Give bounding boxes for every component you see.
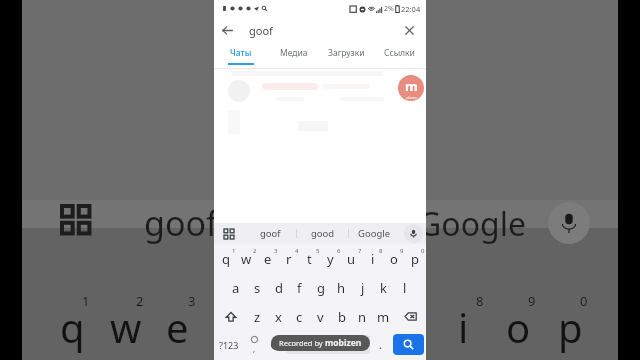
staticText: f [297,279,302,297]
staticText: 1 [82,292,90,310]
staticText: b [338,308,346,326]
staticText: m [405,77,418,95]
button[interactable]: ?123 [214,331,244,358]
button[interactable]: b [331,302,352,331]
staticText: v [317,308,324,326]
staticText: Медиа [280,47,308,59]
staticText: w [241,250,252,268]
staticText: 22:04 [401,4,421,14]
staticText: 9 [528,292,536,310]
button[interactable]: l [394,273,415,302]
button[interactable]: x [268,302,289,331]
staticText: d [275,279,283,297]
staticText: m [377,308,390,326]
staticText: goof [144,200,218,246]
button[interactable]: n [352,302,373,331]
button[interactable]: j [352,273,373,302]
staticText: q [60,300,85,354]
staticText: goof [249,23,396,38]
staticText: o [506,300,531,354]
staticText: 9 [400,247,404,255]
staticText: Чаты [230,47,252,59]
button[interactable]: r [278,244,299,273]
button[interactable]: y [320,244,341,273]
button[interactable]: s [247,273,268,302]
button[interactable]: t [299,244,320,273]
button[interactable]: QWERTY [286,335,370,354]
staticText: 1 [232,247,236,255]
button[interactable]: u [341,244,362,273]
staticText: h [337,279,346,297]
button[interactable]: m [373,302,394,331]
button[interactable]: d [268,273,289,302]
button[interactable]: Backspace [394,302,426,331]
button[interactable]: Voice input [400,223,426,244]
button[interactable]: f [289,273,310,302]
button[interactable]: z [247,302,268,331]
staticText: Google [418,202,527,246]
button[interactable]: h [331,273,352,302]
button[interactable]: w [236,244,257,273]
staticText: e [264,250,272,268]
button[interactable]: Change language [265,331,286,358]
staticText: u [347,250,356,268]
staticText: z [254,308,261,326]
staticText: 5 [316,247,320,255]
staticText: 8 [476,292,484,310]
staticText: g [317,279,325,297]
staticText: r [286,250,292,268]
button[interactable]: c [289,302,310,331]
button[interactable]: Shift [214,302,247,331]
staticText: . [379,337,382,352]
button[interactable]: q [215,244,236,273]
staticText: i [371,250,375,268]
staticText: n [358,308,367,326]
button[interactable]: k [373,273,394,302]
staticText: 3 [188,292,196,310]
button[interactable]: i [362,244,383,273]
staticText: 0 [421,247,425,255]
button[interactable]: p [404,244,425,273]
staticText: y [327,250,334,268]
staticText: j [361,279,365,297]
staticText: s [254,279,261,297]
button[interactable]: v [310,302,331,331]
button[interactable]: Медиа [267,44,320,68]
button[interactable]: Clipboard [214,223,244,244]
button[interactable]: . [370,331,391,358]
button[interactable]: e [257,244,278,273]
staticText: c [296,308,303,326]
staticText: QWERTY [313,340,344,350]
staticText: ?123 [219,339,239,351]
staticText: p [411,250,419,268]
staticText: i [458,300,469,354]
staticText: 3 [274,247,278,255]
staticText: goof [260,227,281,240]
button[interactable]: g [310,273,331,302]
staticText: , [253,343,256,354]
button[interactable]: Загрузки [320,44,373,68]
button[interactable]: goof [244,223,296,244]
button[interactable]: Ссылки [373,44,426,68]
staticText: 2 [136,292,144,310]
button[interactable]: good [297,223,348,244]
staticText: t [307,250,312,268]
button[interactable]: Чаты [214,44,267,68]
staticText: 8 [379,247,383,255]
staticText: q [222,250,230,268]
staticText: obizen [406,95,417,100]
staticText: Загрузки [328,47,365,59]
button[interactable]: o [383,244,404,273]
staticText: 2 [253,247,257,255]
button[interactable]: Google [349,223,400,244]
staticText: 7 [358,247,362,255]
button[interactable]: Back [214,17,241,44]
staticText: a [232,279,240,297]
button[interactable]: a [225,273,247,302]
button[interactable]: Emoji [244,331,265,358]
staticText: 6 [337,247,341,255]
button[interactable]: Clear [396,17,423,44]
staticText: 0 [580,292,588,310]
button[interactable]: Search [393,334,424,355]
staticText: Recorded by [279,338,325,348]
